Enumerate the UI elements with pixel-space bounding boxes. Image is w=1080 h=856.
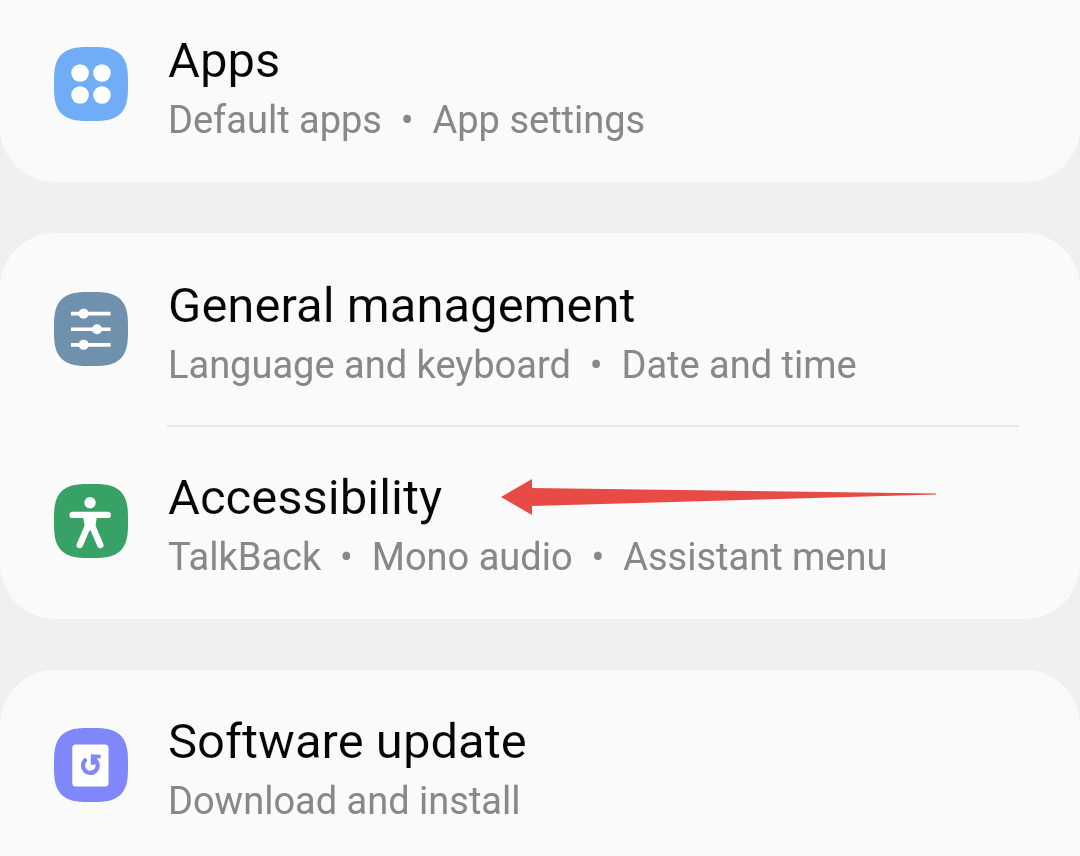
staticText: Accessibility (168, 469, 443, 526)
staticText: Apps (168, 32, 281, 89)
staticText: Software update (168, 713, 527, 770)
button[interactable]: Software update (0, 670, 1080, 856)
staticText: Download and install (168, 779, 521, 824)
button[interactable]: Accessibility (0, 426, 1080, 619)
button[interactable]: Apps (0, 0, 1080, 182)
staticText: Language and keyboard • Date and time (168, 343, 857, 388)
button[interactable]: General management (0, 233, 1080, 426)
other: Annotation arrow pointing at Accessibili… (498, 476, 940, 518)
staticText: Default apps • App settings (168, 98, 646, 143)
staticText: TalkBack • Mono audio • Assistant menu (168, 535, 888, 580)
staticText: General management (168, 277, 636, 334)
